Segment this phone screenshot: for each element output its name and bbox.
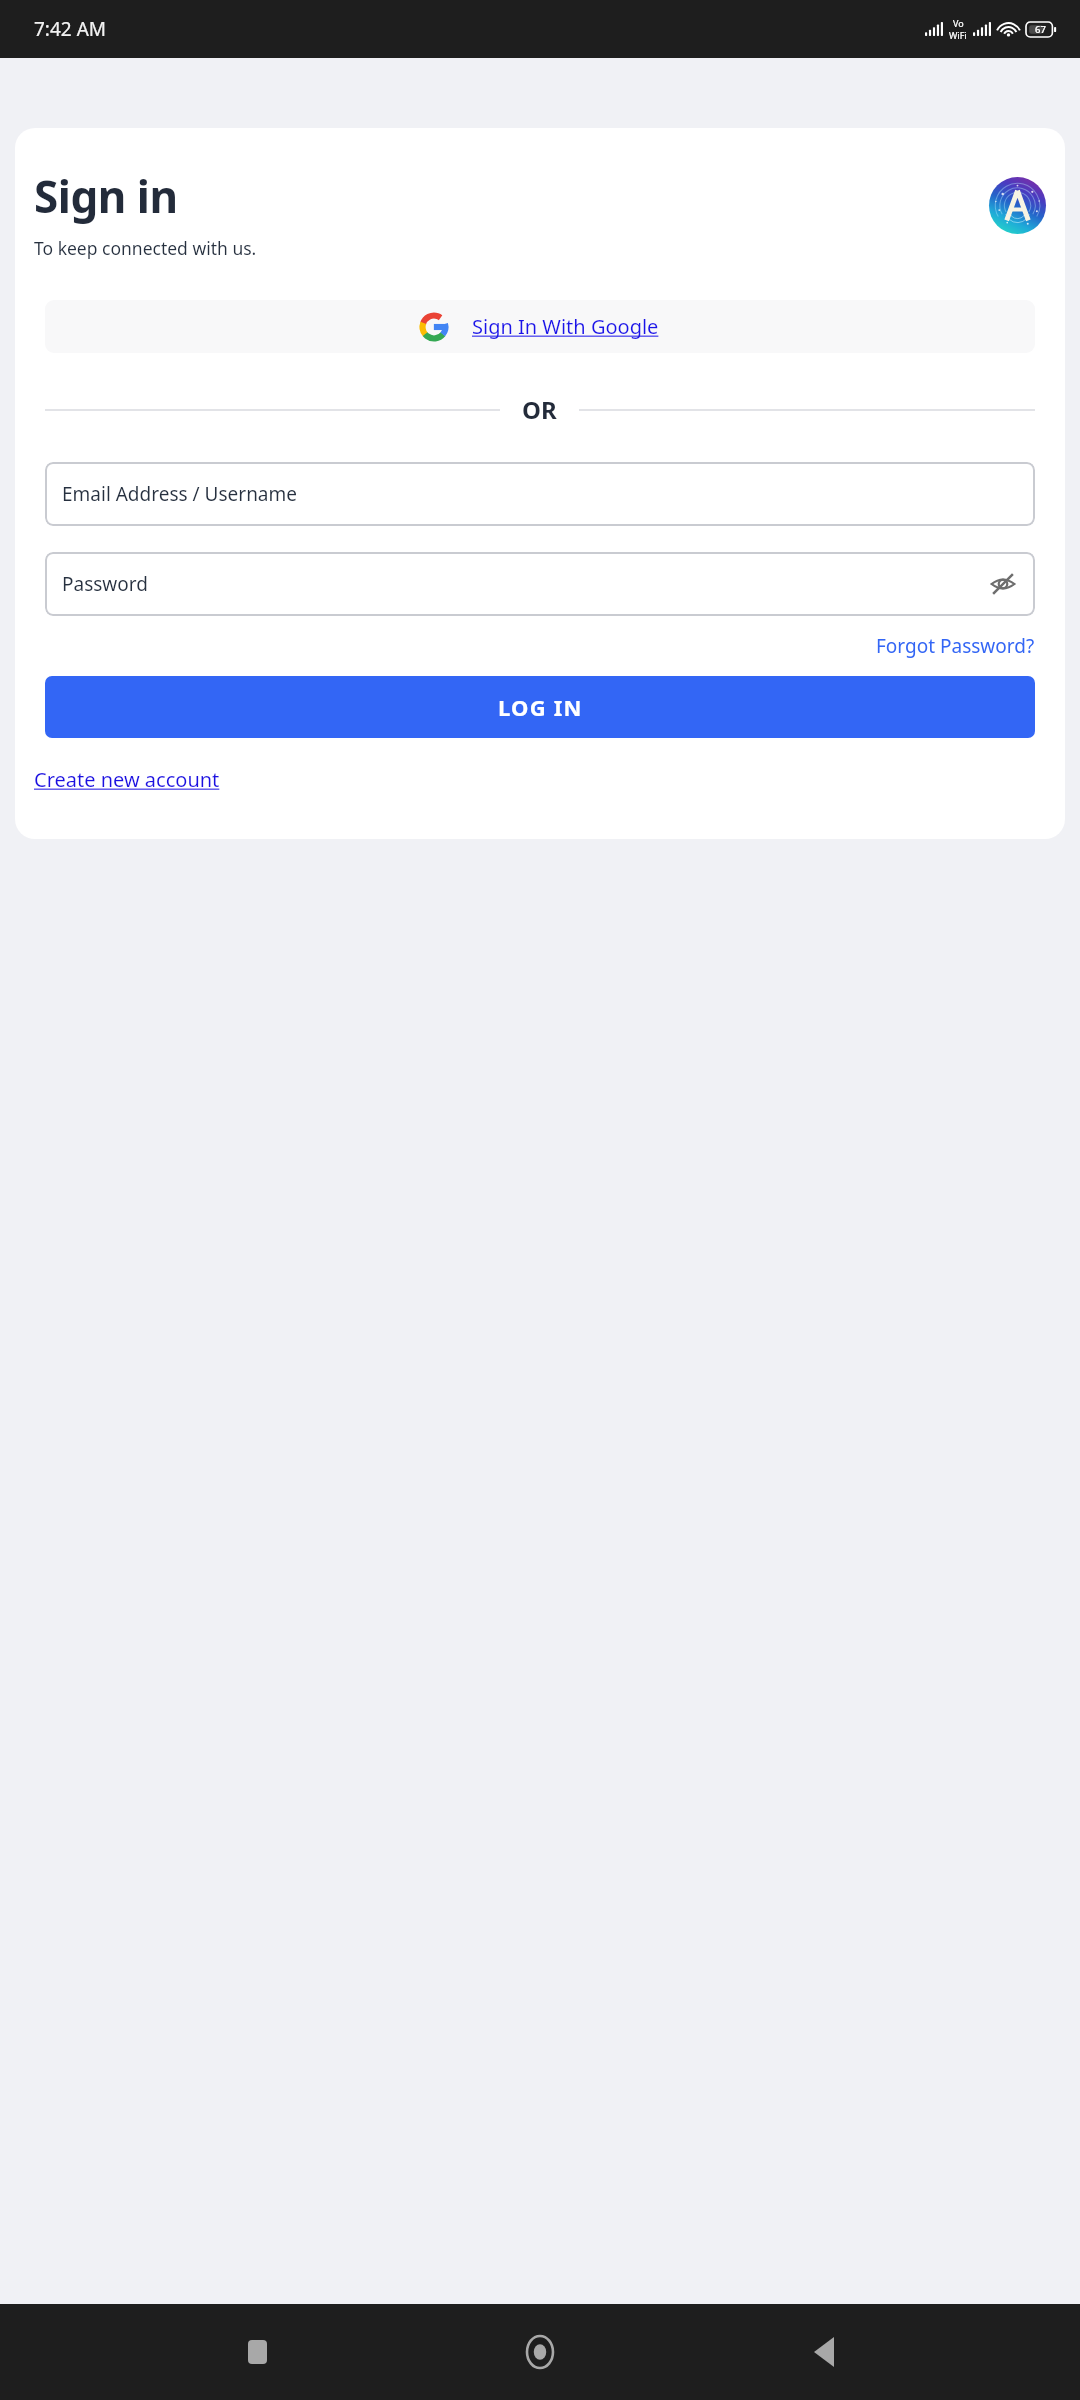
- staticText: 67: [1035, 23, 1046, 36]
- staticText: Email Address / Username: [62, 481, 1018, 507]
- staticText: OR: [522, 393, 557, 426]
- button[interactable]: Password: [45, 552, 1035, 616]
- button[interactable]: Home: [513, 2325, 567, 2379]
- staticText: WiFi: [949, 29, 967, 41]
- button[interactable]: Create new account: [34, 764, 220, 795]
- button[interactable]: Email Address / Username: [45, 462, 1035, 526]
- button[interactable]: Recent apps: [230, 2325, 284, 2379]
- staticText: To keep connected with us.: [34, 236, 257, 260]
- button[interactable]: LOG IN: [45, 676, 1035, 738]
- staticText: Vo: [953, 17, 964, 29]
- staticText: 7:42 AM: [34, 16, 107, 42]
- staticText: Sign In With Google: [472, 313, 659, 340]
- staticText: LOG IN: [498, 692, 583, 722]
- other: App logo: [989, 177, 1046, 234]
- staticText: Sign in: [34, 166, 178, 226]
- staticText: Password: [62, 571, 988, 597]
- button[interactable]: Show password: [988, 569, 1018, 599]
- other: Google: [421, 314, 447, 340]
- button[interactable]: Forgot Password?: [876, 630, 1035, 662]
- button[interactable]: Back: [797, 2325, 851, 2379]
- button[interactable]: Google: [45, 300, 1035, 353]
